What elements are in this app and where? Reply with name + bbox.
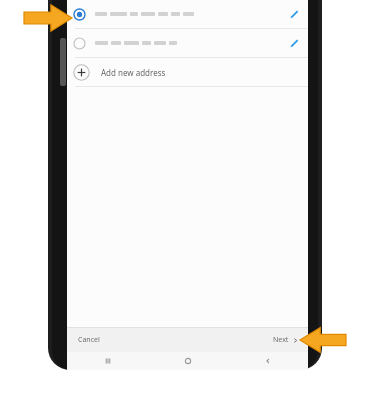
button[interactable]: Edit address [67,29,308,57]
button[interactable]: Edit address [284,33,304,53]
button[interactable]: Next [263,328,308,352]
staticText: Add new address [101,67,166,78]
button[interactable]: Edit address [67,0,308,28]
staticText: Cancel [78,335,100,345]
button[interactable]: Recents [67,352,148,370]
staticText: Next [273,335,289,345]
button[interactable]: Cancel [67,328,111,352]
button[interactable]: Edit address [284,4,304,24]
button[interactable]: Back [228,352,308,370]
button[interactable]: Home [148,352,228,370]
button[interactable]: Add new address [67,58,308,86]
